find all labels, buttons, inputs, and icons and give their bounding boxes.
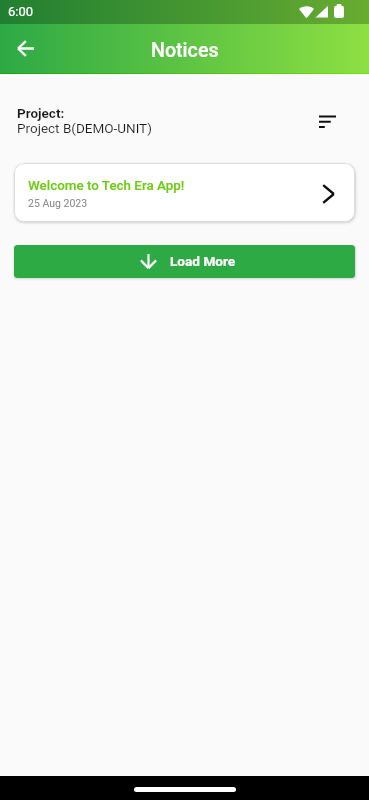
staticText: Project B(DEMO-UNIT) xyxy=(17,120,152,136)
staticText: Load More xyxy=(170,253,236,269)
staticText: Notices xyxy=(151,39,219,62)
button[interactable]: Filter xyxy=(310,104,344,138)
staticText: 25 Aug 2023 xyxy=(28,197,88,209)
staticText: Welcome to Tech Era App! xyxy=(28,178,185,194)
button[interactable]: Load More xyxy=(14,245,355,278)
button[interactable]: Welcome to Tech Era App! xyxy=(14,163,355,222)
staticText: Project: xyxy=(17,105,65,121)
staticText: 6:00 xyxy=(8,4,34,19)
button[interactable]: Back xyxy=(8,31,43,66)
